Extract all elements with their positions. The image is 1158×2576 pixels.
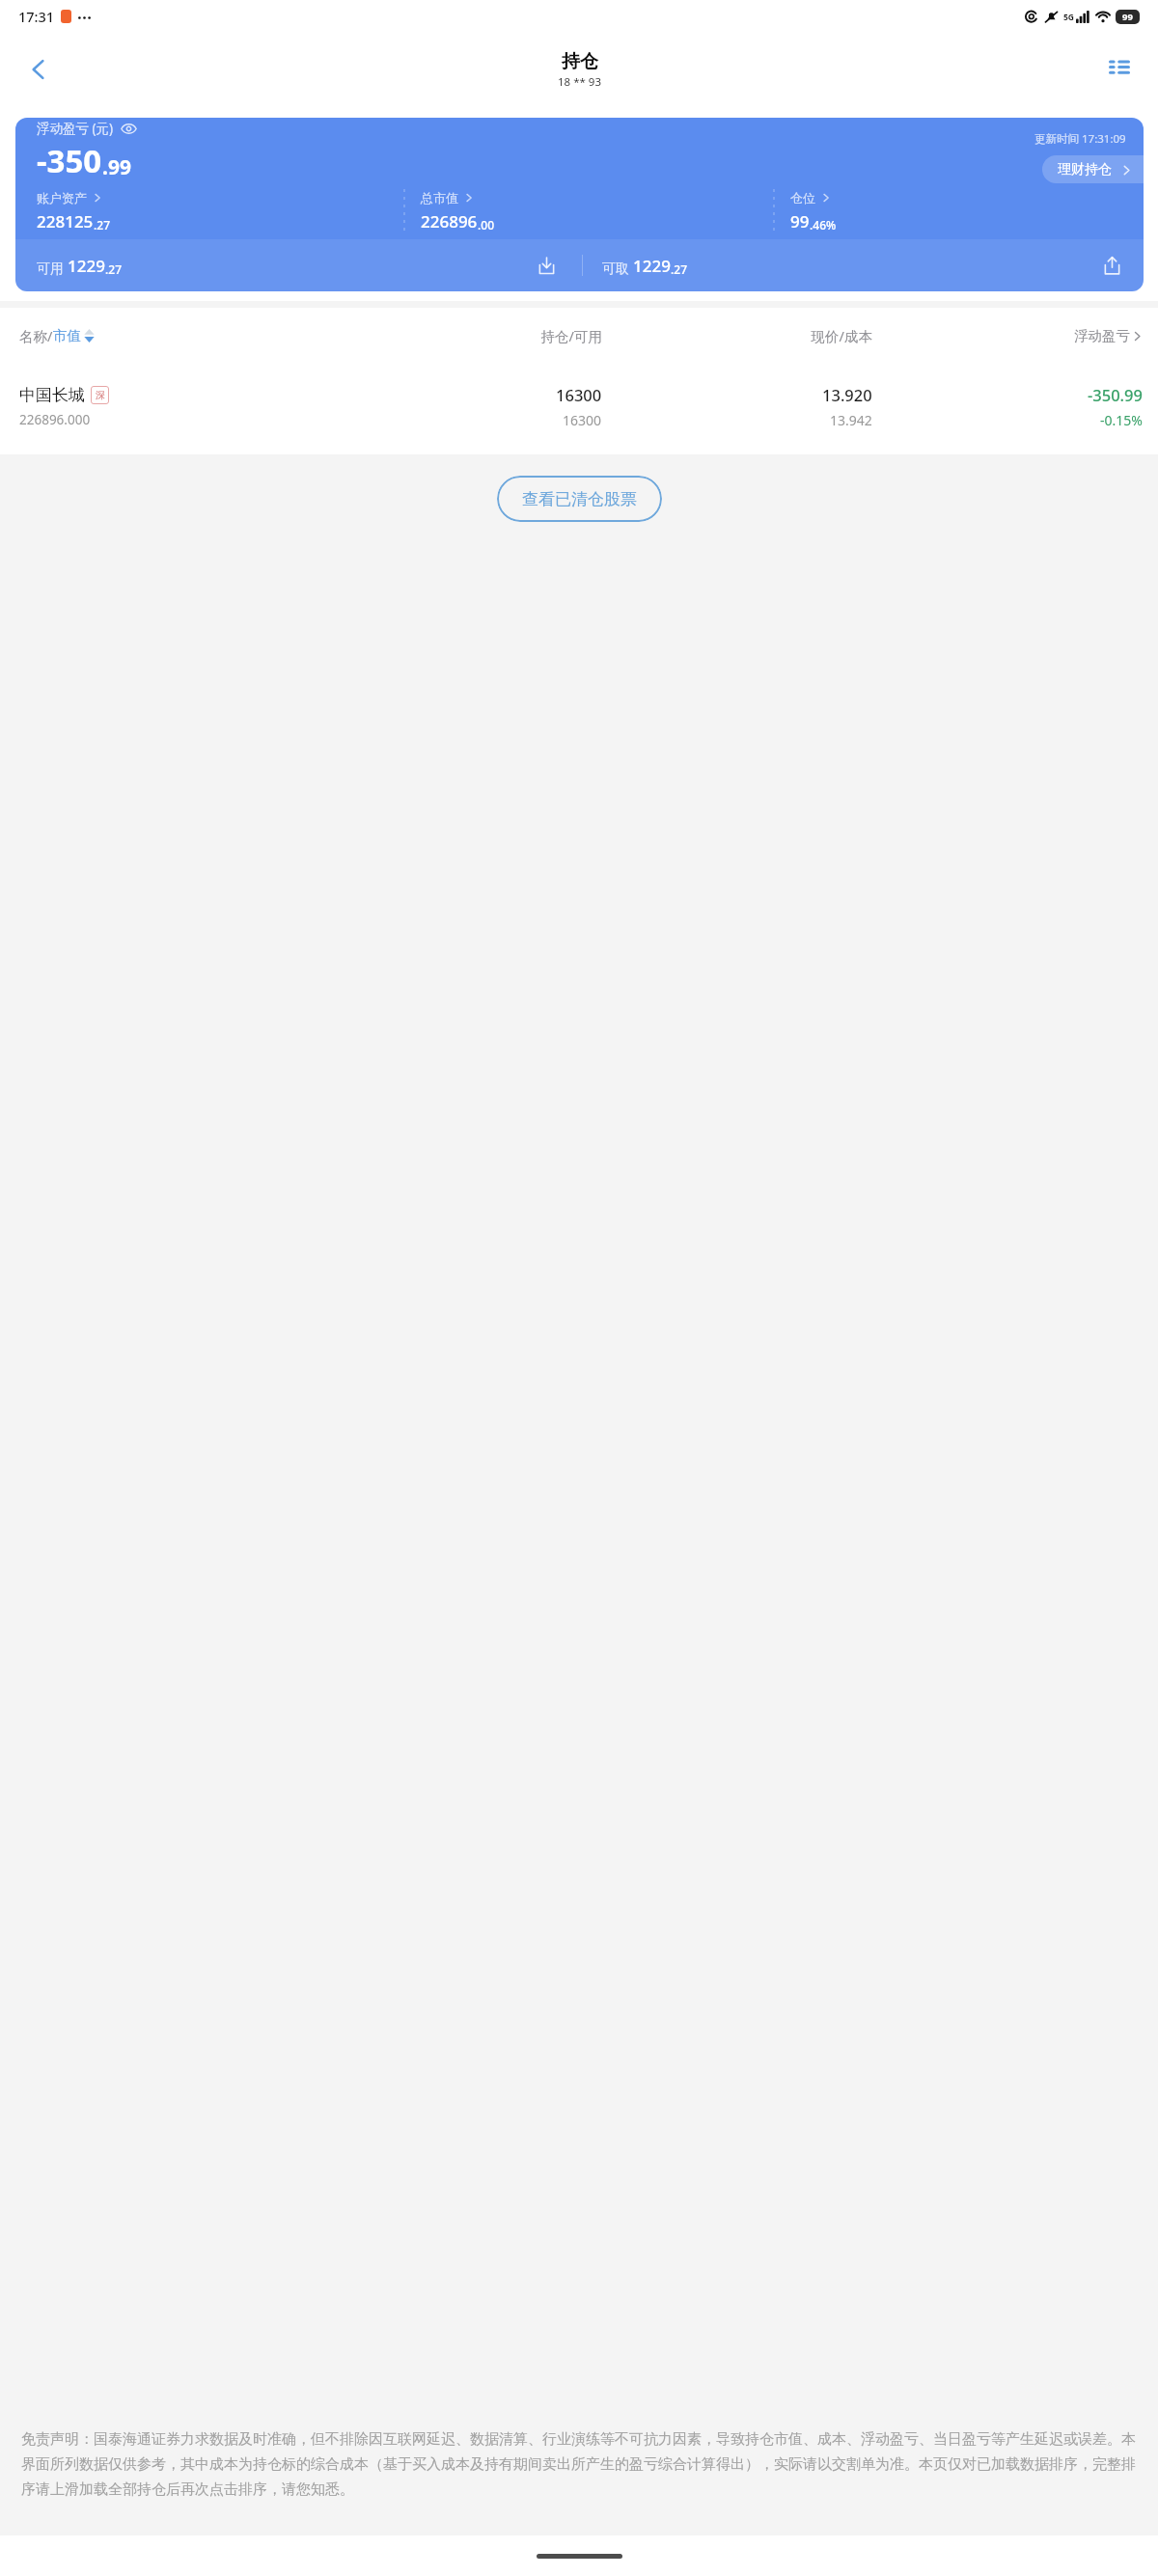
button[interactable]: 账户资产 [37,183,404,239]
staticText: .27 [671,261,687,277]
staticText: .27 [105,261,122,277]
staticText: 可取 [602,259,633,277]
staticText: 深 [96,389,105,401]
button[interactable]: 总市值 [421,183,774,239]
button[interactable]: 名称/ [19,326,332,345]
staticText: 18 ** 93 [558,74,601,90]
staticText: 浮动盈亏 [1074,327,1130,344]
staticText: .27 [94,217,110,233]
staticText: 228125 [37,210,94,233]
staticText: 16300 [563,411,602,429]
staticText: -0.15% [1100,411,1143,429]
staticText: .46% [810,217,837,233]
staticText: 名称/ [19,326,53,345]
button[interactable]: List options [1094,44,1144,95]
staticText: 更新时间 17:31:09 [1034,131,1126,147]
staticText: 17:31 [18,7,55,26]
staticText: 现价/成本 [602,326,872,345]
staticText: 1229 [68,255,105,277]
button[interactable]: 理财持仓 [1042,155,1144,183]
staticText: 16300 [556,384,602,405]
staticText: 99 [790,210,810,233]
button[interactable]: 中国长城 [0,364,1158,449]
staticText: -350 [37,139,102,182]
staticText: 账户资产 [37,190,87,206]
staticText: 13.920 [822,384,872,405]
button[interactable]: 查看已清仓股票 [497,476,662,522]
button[interactable]: 浮动盈亏 [872,327,1143,344]
staticText: 仓位 [790,190,815,206]
button[interactable]: Deposit [532,251,561,280]
staticText: 市值 [53,327,81,344]
staticText: 5G [1063,12,1075,23]
button[interactable]: 仓位 [790,183,1144,239]
staticText: 中国长城 [19,385,85,405]
staticText: .99 [102,153,131,181]
staticText: 可用 [37,259,68,277]
staticText: 1229 [633,255,671,277]
staticText: .00 [478,217,494,233]
button[interactable]: Withdraw [1097,251,1126,280]
staticText: 持仓/可用 [332,326,602,345]
staticText: -350.99 [1088,384,1143,405]
staticText: 查看已清仓股票 [522,489,637,509]
staticText: 持仓 [562,50,598,73]
staticText: 226896.000 [19,411,91,428]
staticText: 总市值 [421,190,458,206]
staticText: 13.942 [830,411,872,429]
button[interactable]: Toggle visibility [121,121,137,137]
staticText: 99 [1122,11,1133,23]
staticText: 浮动盈亏 (元) [37,120,114,137]
staticText: 226896 [421,210,478,233]
button[interactable]: 浮动盈亏 (元) [15,118,1144,291]
staticText: 免责声明：国泰海通证券力求数据及时准确，但不排除因互联网延迟、数据清算、行业演练… [21,2430,1137,2499]
staticText: 理财持仓 [1058,161,1112,178]
button[interactable]: Back [14,44,64,95]
